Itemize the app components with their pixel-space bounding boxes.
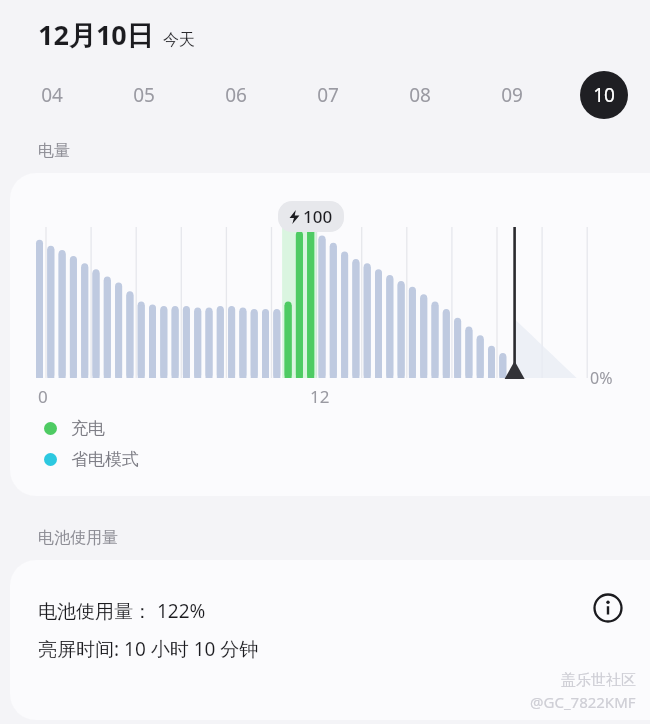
staticText: 0 [38,385,48,408]
staticText: 今天 [163,30,195,50]
staticText: 亮屏时间: 10 小时 10 分钟 [38,636,259,662]
button[interactable]: 05 [120,71,168,119]
staticText: 05 [133,82,155,108]
button[interactable]: 09 [488,71,536,119]
button[interactable]: 10 [580,71,628,119]
button[interactable]: Info [588,588,628,628]
staticText: 12 [310,385,330,408]
staticText: 电池使用量： 122% [38,598,206,624]
staticText: 盖乐世社区 [561,671,636,690]
button[interactable]: 06 [212,71,260,119]
staticText: 07 [317,82,339,108]
staticText: 电量 [38,141,70,161]
staticText: 06 [225,82,247,108]
staticText: 04 [41,82,63,108]
button[interactable]: 电池使用量： 122% [10,560,650,720]
button[interactable]: 08 [396,71,444,119]
staticText: 省电模式 [71,449,139,470]
button[interactable]: 充电 [44,418,105,439]
button[interactable]: 省电模式 [44,449,139,470]
button[interactable]: 100 [289,205,333,228]
staticText: 电池使用量 [38,528,118,548]
staticText: 100 [303,205,333,228]
staticText: 09 [501,82,523,108]
staticText: 12月10日 [38,16,154,53]
staticText: 0% [590,367,613,389]
staticText: 10 [593,82,615,108]
button[interactable]: 04 [28,71,76,119]
button[interactable]: 07 [304,71,352,119]
staticText: 充电 [71,418,105,439]
button[interactable]: 0% [10,173,650,496]
staticText: 08 [409,82,431,108]
staticText: @GC_7822KMF [530,692,636,712]
